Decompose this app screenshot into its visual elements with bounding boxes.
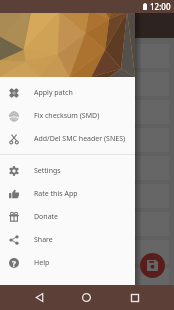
button[interactable]: Rate this App	[0, 182, 135, 205]
button[interactable]	[5, 184, 169, 208]
button[interactable]: Back	[27, 285, 52, 310]
button[interactable]	[5, 100, 169, 124]
button[interactable]	[5, 128, 169, 152]
staticText: Add/Del SMC header (SNES)	[34, 134, 126, 144]
staticText: 12:00	[150, 1, 171, 12]
staticText: ?	[12, 258, 16, 268]
button[interactable]: ?	[0, 251, 135, 274]
staticText: Rate this App	[34, 189, 78, 199]
button[interactable]: Donate	[0, 205, 135, 228]
button[interactable]: Fix checksum (SMD)	[0, 104, 135, 127]
button[interactable]: Recents	[122, 285, 147, 310]
button[interactable]: Share	[0, 228, 135, 251]
button[interactable]	[5, 44, 169, 68]
button[interactable]: Save	[140, 253, 165, 278]
button[interactable]	[5, 72, 169, 96]
button[interactable]	[5, 212, 169, 236]
button[interactable]: Add/Del SMC header (SNES)	[0, 127, 135, 150]
button[interactable]: Home	[74, 285, 99, 310]
button[interactable]	[5, 268, 169, 292]
button[interactable]	[5, 156, 169, 180]
staticText: Share	[34, 235, 53, 245]
button[interactable]: Settings	[0, 159, 135, 182]
staticText: Apply patch	[34, 88, 73, 98]
staticText: Fix checksum (SMD)	[34, 111, 100, 121]
staticText: Help	[34, 258, 50, 268]
button[interactable]: Apply patch	[0, 81, 135, 104]
button[interactable]	[5, 240, 169, 264]
staticText: Settings	[34, 166, 61, 176]
staticText: Donate	[34, 212, 59, 222]
